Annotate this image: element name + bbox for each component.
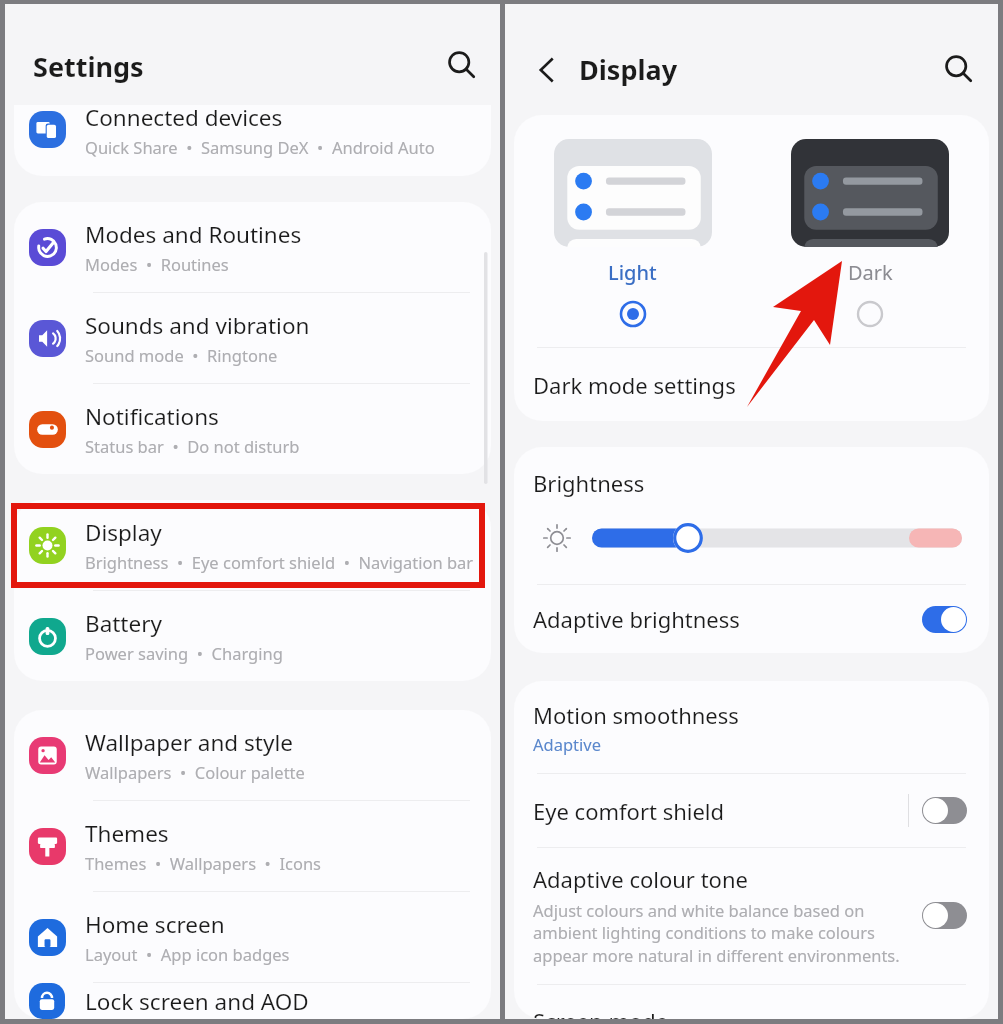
staticText: Dark mode settings [533, 370, 736, 400]
staticText: Eye comfort shield [533, 796, 725, 826]
staticText: Settings [33, 48, 144, 85]
staticText: Home screen [85, 909, 225, 940]
staticText: Status bar • Do not disturb [85, 435, 300, 457]
staticText: Connected devices [85, 105, 283, 133]
staticText: Battery [85, 608, 162, 639]
staticText: Brightness • Eye comfort shield • Naviga… [85, 551, 474, 573]
staticText: Power saving • Charging [85, 642, 283, 664]
button[interactable]: Toggle [922, 606, 967, 633]
staticText: Light [608, 259, 657, 286]
staticText: Modes • Routines [85, 253, 229, 275]
staticText: Display [85, 517, 162, 548]
staticText: Adaptive brightness [533, 604, 740, 634]
button[interactable]: Home screen [14, 892, 491, 982]
button[interactable]: Toggle [922, 797, 967, 824]
staticText: Adaptive [533, 733, 601, 755]
button[interactable]: Lock screen and AOD [14, 983, 491, 1019]
button[interactable]: Search [936, 46, 982, 92]
staticText: Display [579, 51, 678, 88]
staticText: Sound mode • Ringtone [85, 344, 278, 366]
staticText: Quick Share • Samsung DeX • Android Auto [85, 136, 435, 158]
button[interactable]: Search [439, 42, 485, 88]
button[interactable]: Connected devices [14, 105, 491, 165]
button[interactable]: Modes and Routines [14, 202, 491, 292]
staticText: Brightness [533, 468, 645, 498]
button[interactable]: Dark mode settings [514, 348, 989, 421]
button[interactable]: Light [514, 139, 751, 328]
button[interactable]: Battery [14, 591, 491, 681]
button[interactable]: Sounds and vibration [14, 293, 491, 383]
staticText: Motion smoothness [533, 700, 739, 730]
staticText: Dark [848, 259, 893, 286]
staticText: Themes • Wallpapers • Icons [85, 852, 321, 874]
button[interactable]: Display [14, 500, 491, 590]
button[interactable]: Motion smoothness [514, 700, 989, 755]
button[interactable]: Adaptive colour tone [514, 848, 989, 984]
button[interactable]: Notifications [14, 384, 491, 474]
staticText: Lock screen and AOD [85, 986, 309, 1017]
button[interactable]: Wallpaper and style [14, 710, 491, 800]
staticText: Sounds and vibration [85, 310, 310, 341]
staticText: Wallpapers • Colour palette [85, 761, 305, 783]
button[interactable]: Themes [14, 801, 491, 891]
button[interactable]: Dark [751, 139, 989, 328]
staticText: Wallpaper and style [85, 727, 293, 758]
staticText: Screen mode [533, 1006, 669, 1019]
staticText: Layout • App icon badges [85, 943, 290, 965]
button[interactable]: Back [527, 50, 567, 90]
staticText: Themes [85, 818, 169, 849]
staticText: Adaptive colour tone [533, 864, 748, 894]
button[interactable]: Toggle [922, 902, 967, 929]
staticText: Adjust colours and white balance based o… [533, 899, 913, 966]
button[interactable]: Eye comfort shield [514, 774, 989, 847]
staticText: Notifications [85, 401, 219, 432]
staticText: Modes and Routines [85, 219, 302, 250]
button[interactable]: Adaptive brightness [514, 585, 989, 653]
